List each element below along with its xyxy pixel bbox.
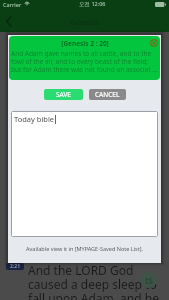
staticText: tS: [145, 275, 153, 286]
staticText: 2:21: [10, 263, 20, 270]
staticText: 오전 12:06: [79, 0, 106, 8]
staticText: Available view it in [MYPAGE-Saved Note …: [8, 245, 161, 252]
staticText: Today bible: [14, 114, 55, 124]
button[interactable]: CANCEL: [89, 89, 126, 100]
button[interactable]: Close: [150, 39, 158, 47]
button[interactable]: SAVE: [44, 89, 83, 100]
button[interactable]: Verse action: [141, 272, 157, 288]
staticText: CANCEL: [95, 90, 120, 99]
staticText: SAVE: [56, 90, 71, 99]
staticText: And Adam gave names to all cattle, and t…: [11, 49, 159, 74]
staticText: And the LORD God caused a deep sleep to …: [28, 262, 162, 300]
staticText: Genesis: [70, 17, 100, 27]
staticText: [Genesis 2 : 20]: [11, 39, 159, 48]
button[interactable]: Back: [0, 13, 17, 30]
staticText: Carrier: [3, 1, 22, 8]
